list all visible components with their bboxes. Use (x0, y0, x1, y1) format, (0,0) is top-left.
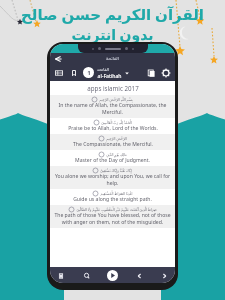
staticText: إِيَّاكَ نَعْبُدُ وَإِيَّاكَ نَسْتَعِينُ (100, 168, 132, 173)
staticText: The path of those You have blessed, not … (54, 212, 171, 226)
staticText: بِسْمِ اللَّهِ الرَّحْمَٰنِ الرَّحِيمِ (99, 97, 133, 102)
staticText: مَالِكِ يَوْمِ الدِّينِ (106, 152, 127, 157)
staticText: الْحَمْدُ لِلَّهِ رَبِّ الْعَالَمِينَ (101, 120, 132, 125)
staticText: al-Fatihah (97, 72, 122, 79)
staticText: Master of the Day of Judgment. (75, 157, 150, 164)
staticText: الفاتحة (106, 56, 119, 61)
staticText: Praise be to Allah, Lord of the Worlds. (68, 125, 158, 132)
staticText: In the name of Allah, the Compassionate,… (54, 102, 171, 116)
button[interactable]: مَالِكِ يَوْمِ الدِّينِ (50, 150, 175, 166)
button[interactable]: صِرَاطَ الَّذِينَ أَنْعَمْتَ عَلَيْهِمْ … (50, 205, 175, 228)
button[interactable]: Search (81, 270, 92, 281)
staticText: 1 (87, 69, 91, 77)
button[interactable]: Menu (54, 68, 64, 78)
button[interactable]: Bookmark (69, 68, 79, 78)
staticText: The Compassionate, the Merciful. (73, 141, 153, 148)
staticText: القرآن الكريم حسن صالح (21, 4, 204, 24)
staticText: الفاتحة (97, 67, 109, 72)
button[interactable]: Settings (161, 68, 171, 78)
staticText: apps islamic 2017 (87, 84, 139, 92)
button[interactable]: Play (107, 270, 118, 281)
staticText: Guide us along the straight path. (73, 196, 152, 203)
button[interactable]: الْحَمْدُ لِلَّهِ رَبِّ الْعَالَمِينَ (50, 118, 175, 134)
button[interactable]: إِيَّاكَ نَعْبُدُ وَإِيَّاكَ نَسْتَعِينُ (50, 166, 175, 189)
button[interactable]: Copy (146, 68, 156, 78)
button[interactable]: اهْدِنَا الصِّرَاطَ الْمُسْتَقِيمَ (50, 189, 175, 205)
button[interactable]: Dropdown (124, 70, 130, 76)
button[interactable]: Surah number (83, 67, 94, 78)
button[interactable]: الرَّحْمَٰنِ الرَّحِيمِ (50, 134, 175, 150)
staticText: اهْدِنَا الصِّرَاطَ الْمُسْتَقِيمَ (100, 191, 133, 196)
staticText: You alone we worship; and upon You, we c… (54, 173, 171, 187)
staticText: صِرَاطَ الَّذِينَ أَنْعَمْتَ عَلَيْهِمْ … (76, 207, 157, 212)
button[interactable]: Back (53, 54, 63, 64)
button[interactable]: Page (55, 270, 66, 281)
staticText: الرَّحْمَٰنِ الرَّحِيمِ (106, 136, 127, 141)
button[interactable]: بِسْمِ اللَّهِ الرَّحْمَٰنِ الرَّحِيمِ (50, 95, 175, 118)
staticText: بدون انترنت (71, 25, 154, 44)
button[interactable]: Next (159, 270, 170, 281)
button[interactable]: Previous (133, 270, 144, 281)
